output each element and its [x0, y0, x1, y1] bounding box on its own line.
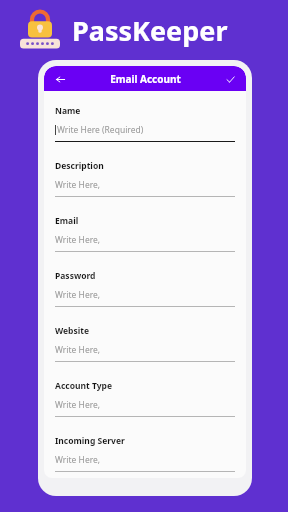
staticText: Website [55, 325, 90, 337]
staticText: Write Here, [55, 234, 101, 246]
staticText: Name [55, 105, 81, 117]
staticText: Email Account [110, 72, 181, 86]
staticText: PassKeeper [72, 12, 228, 49]
staticText: Write Here (Required) [57, 124, 144, 136]
button[interactable]: Back [50, 69, 70, 89]
button[interactable]: Password [55, 270, 235, 307]
staticText: Password [55, 270, 96, 282]
staticText: Incoming Server [55, 435, 125, 447]
staticText: Write Here, [55, 289, 101, 301]
button[interactable]: Email [55, 215, 235, 252]
button[interactable]: Website [55, 325, 235, 362]
button[interactable]: Save [220, 69, 240, 89]
staticText: Email [55, 215, 79, 227]
staticText: Write Here, [55, 454, 101, 466]
staticText: Write Here, [55, 179, 101, 191]
button[interactable]: Incoming Server [55, 435, 235, 472]
button[interactable]: Description [55, 160, 235, 197]
staticText: Account Type [55, 380, 112, 392]
staticText: Write Here, [55, 399, 101, 411]
staticText: Description [55, 160, 104, 172]
button[interactable]: Name [55, 105, 235, 142]
button[interactable]: Account Type [55, 380, 235, 417]
staticText: Write Here, [55, 344, 101, 356]
